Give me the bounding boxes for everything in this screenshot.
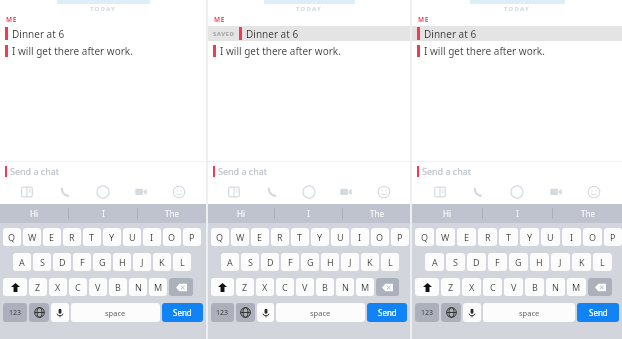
button[interactable]: Backspace (588, 278, 612, 296)
button[interactable]: H (321, 253, 339, 271)
button[interactable]: Stickers (583, 181, 605, 203)
button[interactable]: X (256, 278, 274, 296)
button[interactable]: Y (520, 228, 539, 246)
button[interactable]: C (276, 278, 294, 296)
button[interactable]: E (457, 228, 476, 246)
button[interactable]: F (488, 253, 507, 271)
button[interactable]: O (371, 228, 389, 246)
button[interactable]: A (425, 253, 444, 271)
button[interactable]: Call (261, 181, 283, 203)
button[interactable]: Voice input (463, 303, 481, 322)
button[interactable]: B (316, 278, 334, 296)
button[interactable]: X (49, 278, 67, 296)
button[interactable]: Send a chat (0, 162, 206, 180)
button[interactable]: U (123, 228, 141, 246)
button[interactable]: Camera (92, 181, 114, 203)
button[interactable]: G (301, 253, 319, 271)
button[interactable]: Hi (412, 204, 482, 223)
button[interactable]: Q (3, 228, 21, 246)
button[interactable]: V (504, 278, 523, 296)
button[interactable]: Camera (298, 181, 320, 203)
button[interactable]: The (553, 204, 622, 223)
button[interactable]: I (483, 204, 552, 223)
button[interactable]: Send (577, 303, 619, 322)
button[interactable]: Send a chat (208, 162, 410, 180)
button[interactable]: O (583, 228, 602, 246)
button[interactable]: P (391, 228, 409, 246)
button[interactable]: Z (29, 278, 47, 296)
button[interactable]: O (163, 228, 181, 246)
button[interactable]: R (63, 228, 81, 246)
button[interactable]: H (530, 253, 549, 271)
button[interactable]: space (483, 303, 575, 322)
button[interactable]: W (436, 228, 455, 246)
button[interactable]: Shift (3, 278, 27, 296)
button[interactable]: W (231, 228, 249, 246)
button[interactable]: Change keyboard (236, 303, 255, 322)
button[interactable]: Send a chat (412, 162, 622, 180)
button[interactable]: M (356, 278, 374, 296)
button[interactable]: Q (211, 228, 229, 246)
button[interactable]: I (69, 204, 137, 223)
button[interactable]: Video call (545, 181, 567, 203)
button[interactable]: P (183, 228, 201, 246)
button[interactable]: X (462, 278, 481, 296)
button[interactable]: U (331, 228, 349, 246)
button[interactable]: 123 (3, 303, 27, 322)
button[interactable]: T (291, 228, 309, 246)
button[interactable]: I (562, 228, 581, 246)
button[interactable]: Change keyboard (441, 303, 461, 322)
button[interactable]: I (275, 204, 342, 223)
button[interactable]: R (271, 228, 289, 246)
button[interactable]: Stickers (373, 181, 395, 203)
button[interactable]: Q (415, 228, 434, 246)
button[interactable]: V (89, 278, 107, 296)
button[interactable]: A (221, 253, 239, 271)
button[interactable]: Video call (130, 181, 152, 203)
button[interactable]: I (351, 228, 369, 246)
button[interactable]: Backspace (169, 278, 193, 296)
button[interactable]: D (53, 253, 71, 271)
button[interactable]: G (509, 253, 528, 271)
button[interactable]: The (138, 204, 206, 223)
button[interactable]: M (149, 278, 167, 296)
button[interactable]: S (33, 253, 51, 271)
button[interactable]: Z (441, 278, 460, 296)
button[interactable]: T (83, 228, 101, 246)
button[interactable]: S (241, 253, 259, 271)
button[interactable]: Y (311, 228, 329, 246)
button[interactable]: G (93, 253, 111, 271)
button[interactable]: W (23, 228, 41, 246)
button[interactable]: Hi (208, 204, 274, 223)
button[interactable]: K (572, 253, 591, 271)
button[interactable]: C (69, 278, 87, 296)
button[interactable]: Voice input (257, 303, 274, 322)
button[interactable]: 123 (415, 303, 439, 322)
button[interactable]: J (133, 253, 151, 271)
button[interactable]: Backspace (376, 278, 399, 296)
button[interactable]: C (483, 278, 502, 296)
button[interactable]: J (551, 253, 570, 271)
button[interactable]: Call (54, 181, 76, 203)
button[interactable]: Shift (415, 278, 439, 296)
button[interactable]: Y (103, 228, 121, 246)
button[interactable]: L (381, 253, 399, 271)
button[interactable]: B (525, 278, 544, 296)
button[interactable]: Send (162, 303, 203, 322)
button[interactable]: Send (367, 303, 407, 322)
button[interactable]: L (173, 253, 191, 271)
button[interactable]: Voice input (51, 303, 69, 322)
button[interactable]: H (113, 253, 131, 271)
button[interactable]: E (251, 228, 269, 246)
button[interactable]: Call (467, 181, 489, 203)
button[interactable]: L (593, 253, 612, 271)
button[interactable]: A (13, 253, 31, 271)
button[interactable]: M (567, 278, 586, 296)
button[interactable]: B (109, 278, 127, 296)
button[interactable]: I (143, 228, 161, 246)
button[interactable]: U (541, 228, 560, 246)
button[interactable]: R (478, 228, 497, 246)
button[interactable]: N (336, 278, 354, 296)
button[interactable]: Shift (211, 278, 234, 296)
button[interactable]: F (281, 253, 299, 271)
